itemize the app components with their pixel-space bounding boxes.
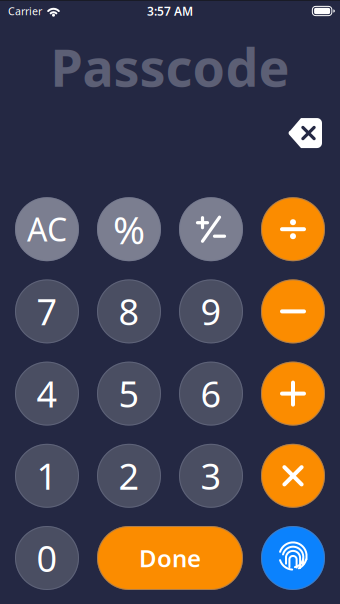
button[interactable]: 4 — [15, 362, 79, 426]
button[interactable]: Plus or minus — [179, 197, 243, 261]
button[interactable]: 2 — [97, 444, 161, 508]
staticText: 4 — [36, 370, 57, 417]
button[interactable]: 0 — [15, 526, 79, 590]
button[interactable]: 1 — [15, 444, 79, 508]
button[interactable]: 3 — [179, 444, 243, 508]
staticText: Done — [139, 542, 201, 574]
button[interactable]: Minus — [261, 279, 325, 343]
staticText: 2 — [118, 452, 139, 500]
button[interactable]: Multiply — [261, 444, 325, 508]
staticText: 0 — [36, 534, 57, 582]
button[interactable]: Done — [97, 526, 243, 590]
staticText: 7 — [36, 287, 57, 335]
button[interactable]: 7 — [15, 279, 79, 343]
button[interactable]: Divide — [261, 197, 325, 261]
button[interactable]: AC — [15, 197, 79, 261]
button[interactable]: % — [97, 197, 161, 261]
staticText: AC — [27, 208, 67, 250]
staticText: 1 — [36, 452, 57, 500]
button[interactable]: Delete — [288, 118, 322, 148]
staticText: 3:57 AM — [147, 3, 193, 19]
staticText: Passcode — [50, 32, 289, 101]
staticText: % — [113, 203, 145, 255]
staticText: 6 — [200, 370, 221, 417]
button[interactable]: 8 — [97, 279, 161, 343]
button[interactable]: 9 — [179, 279, 243, 343]
staticText: 5 — [118, 370, 139, 417]
button[interactable]: 6 — [179, 362, 243, 426]
staticText: 3 — [200, 452, 221, 500]
staticText: 9 — [200, 287, 221, 335]
button[interactable]: Plus — [261, 362, 325, 426]
staticText: Carrier — [8, 4, 42, 18]
staticText: 8 — [118, 287, 139, 335]
button[interactable]: Touch ID — [261, 526, 325, 590]
button[interactable]: 5 — [97, 362, 161, 426]
